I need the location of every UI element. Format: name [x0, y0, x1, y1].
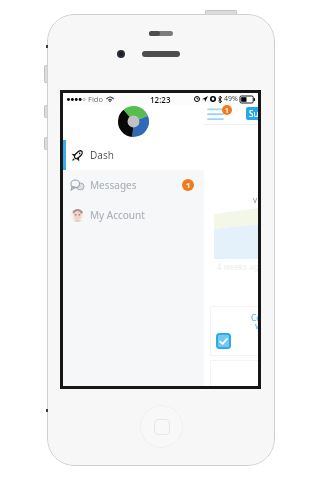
staticText: 49% — [224, 94, 238, 104]
button[interactable]: Home — [140, 405, 183, 448]
button[interactable]: Checkbox — [216, 333, 231, 349]
staticText: 1 — [225, 106, 229, 115]
button[interactable]: Sub — [246, 107, 258, 120]
staticText: 12:23 — [150, 94, 171, 105]
button[interactable]: Messages — [63, 170, 204, 200]
staticText: Dash — [90, 148, 114, 162]
staticText: 1 — [186, 180, 191, 190]
staticText: 4 weeks ago — [217, 261, 258, 272]
staticText: v — [255, 320, 258, 332]
staticText: Sub — [249, 108, 258, 119]
staticText: Fido — [88, 94, 103, 104]
staticText: Co — [251, 312, 258, 324]
staticText: v — [253, 194, 258, 205]
button[interactable]: Co — [210, 306, 258, 356]
staticText: Messages — [90, 178, 137, 192]
button[interactable]: My Account — [63, 200, 204, 230]
button[interactable]: Menu — [208, 107, 223, 121]
staticText: My Account — [90, 208, 145, 222]
button[interactable]: Dash — [63, 140, 204, 170]
